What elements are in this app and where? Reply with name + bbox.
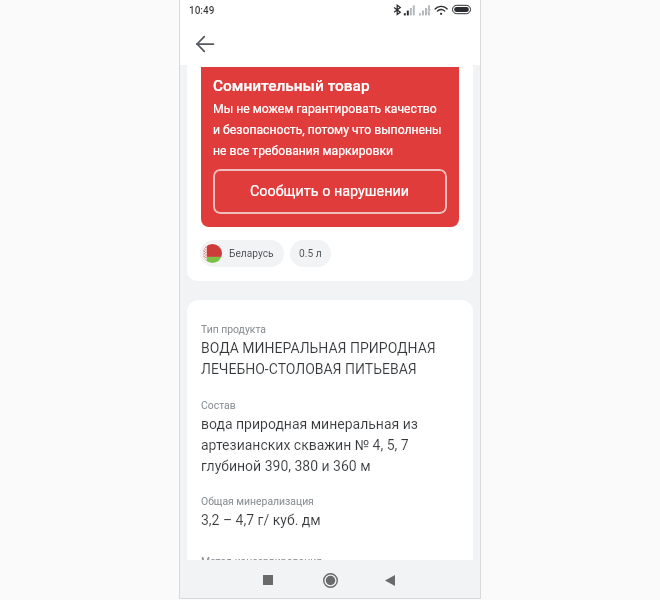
staticText: Состав xyxy=(201,399,236,411)
staticText: 3,2 – 4,7 г/ куб. дм xyxy=(201,512,321,528)
staticText: Метод консервирования xyxy=(201,555,322,567)
button[interactable]: Сообщить о нарушении xyxy=(213,169,447,214)
staticText: 0.5 л xyxy=(299,248,322,260)
staticText: Сообщить о нарушении xyxy=(250,183,410,200)
staticText: Мы не можем гарантировать качество и без… xyxy=(213,102,442,158)
button[interactable]: Беларусь xyxy=(200,240,284,267)
staticText: 10:49 xyxy=(189,5,215,17)
button[interactable]: Recent apps xyxy=(250,562,286,598)
staticText: вода природная минеральная из артезианск… xyxy=(201,416,418,474)
button[interactable]: Back xyxy=(372,562,408,598)
staticText: Беларусь xyxy=(229,248,274,260)
staticText: ВОДА МИНЕРАЛЬНАЯ ПРИРОДНАЯ ЛЕЧЕБНО-СТОЛО… xyxy=(201,340,436,377)
staticText: Общая минерализация xyxy=(201,495,314,507)
staticText: Сомнительный товар xyxy=(213,77,370,95)
staticText: Тип продукта xyxy=(201,323,266,335)
button[interactable]: Back xyxy=(188,27,222,61)
button[interactable]: Home xyxy=(312,562,348,598)
button[interactable]: 0.5 л xyxy=(290,240,331,267)
